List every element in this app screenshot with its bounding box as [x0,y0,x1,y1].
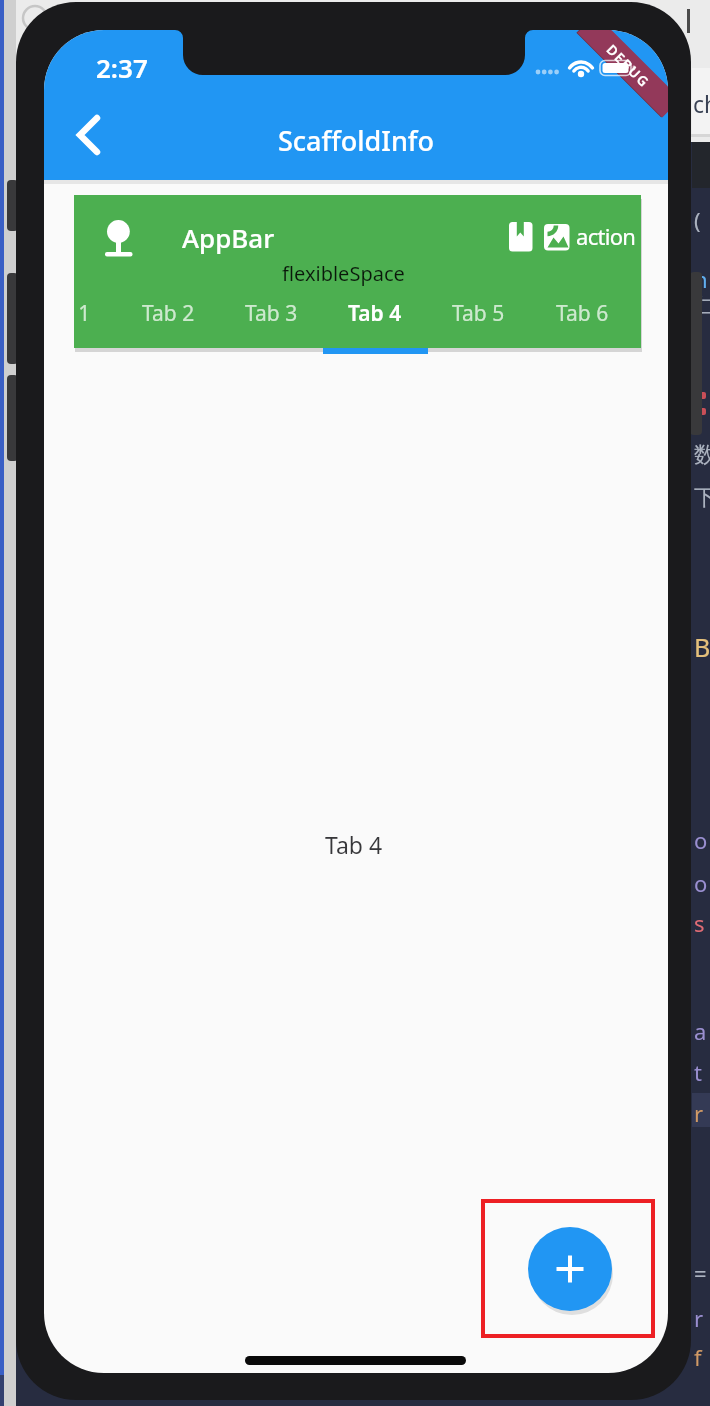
button[interactable]: Tab 1 [74,299,114,327]
staticText: DEBUG [602,40,653,91]
staticText: Tab 3 [245,299,298,327]
button[interactable] [509,222,533,252]
staticText: r [694,1098,710,1128]
staticText: 2:37 [96,50,148,78]
staticText: ScaffoldInfo [278,122,434,156]
staticText: 仁 [694,292,710,322]
staticText: o [694,825,710,855]
staticText: ch [693,88,710,118]
staticText: action [576,221,636,251]
staticText: r [694,1303,710,1333]
staticText: f [694,1342,710,1372]
button[interactable]: Tab 6 [532,299,632,327]
staticText: flexibleSpace [282,260,405,287]
button[interactable] [528,1227,612,1311]
staticText: o [694,868,710,898]
button[interactable] [544,224,570,251]
button[interactable]: Tab 2 [118,299,218,327]
staticText: Tab 4 [348,299,402,327]
button[interactable]: Tab 4 [325,299,425,327]
staticText: B [694,630,710,663]
staticText: Tab 2 [142,299,195,327]
staticText: Tab 5 [452,299,505,327]
staticText: AppBar [182,220,275,255]
staticText: Tab 1 [74,299,91,327]
button[interactable]: Tab 5 [428,299,528,327]
staticText: 数 [694,441,710,471]
staticText: t [694,1057,710,1087]
staticText: (1 [694,205,710,235]
staticText: s [694,908,710,938]
button[interactable] [76,115,106,155]
button[interactable]: Tab 3 [221,299,321,327]
staticText: a [694,1016,710,1046]
staticText: = [694,1258,710,1288]
staticText: 下 [694,484,710,514]
staticText: n [694,264,710,294]
staticText: Tab 6 [556,299,609,327]
staticText: Tab 4 [325,829,383,857]
